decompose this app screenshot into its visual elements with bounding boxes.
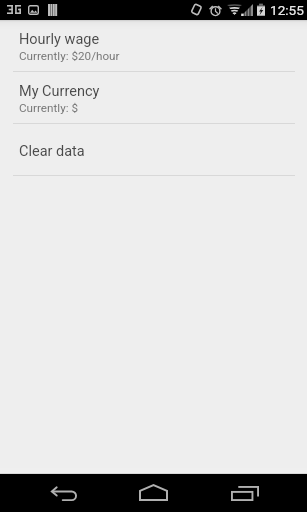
staticText: Currently: $ [19, 101, 79, 115]
staticText: 12:55 [270, 2, 304, 18]
staticText: Currently: $20/hour [19, 49, 120, 63]
staticText: Clear data [19, 143, 85, 160]
staticText: Hourly wage [19, 31, 100, 48]
button[interactable]: Recent apps [219, 474, 271, 512]
staticText: My Currency [19, 83, 100, 100]
button[interactable]: My Currency [0, 72, 307, 124]
button[interactable]: Back [38, 474, 90, 512]
button[interactable]: Hourly wage [0, 20, 307, 72]
button[interactable]: Home [128, 474, 180, 512]
button[interactable]: Clear data [0, 124, 307, 176]
